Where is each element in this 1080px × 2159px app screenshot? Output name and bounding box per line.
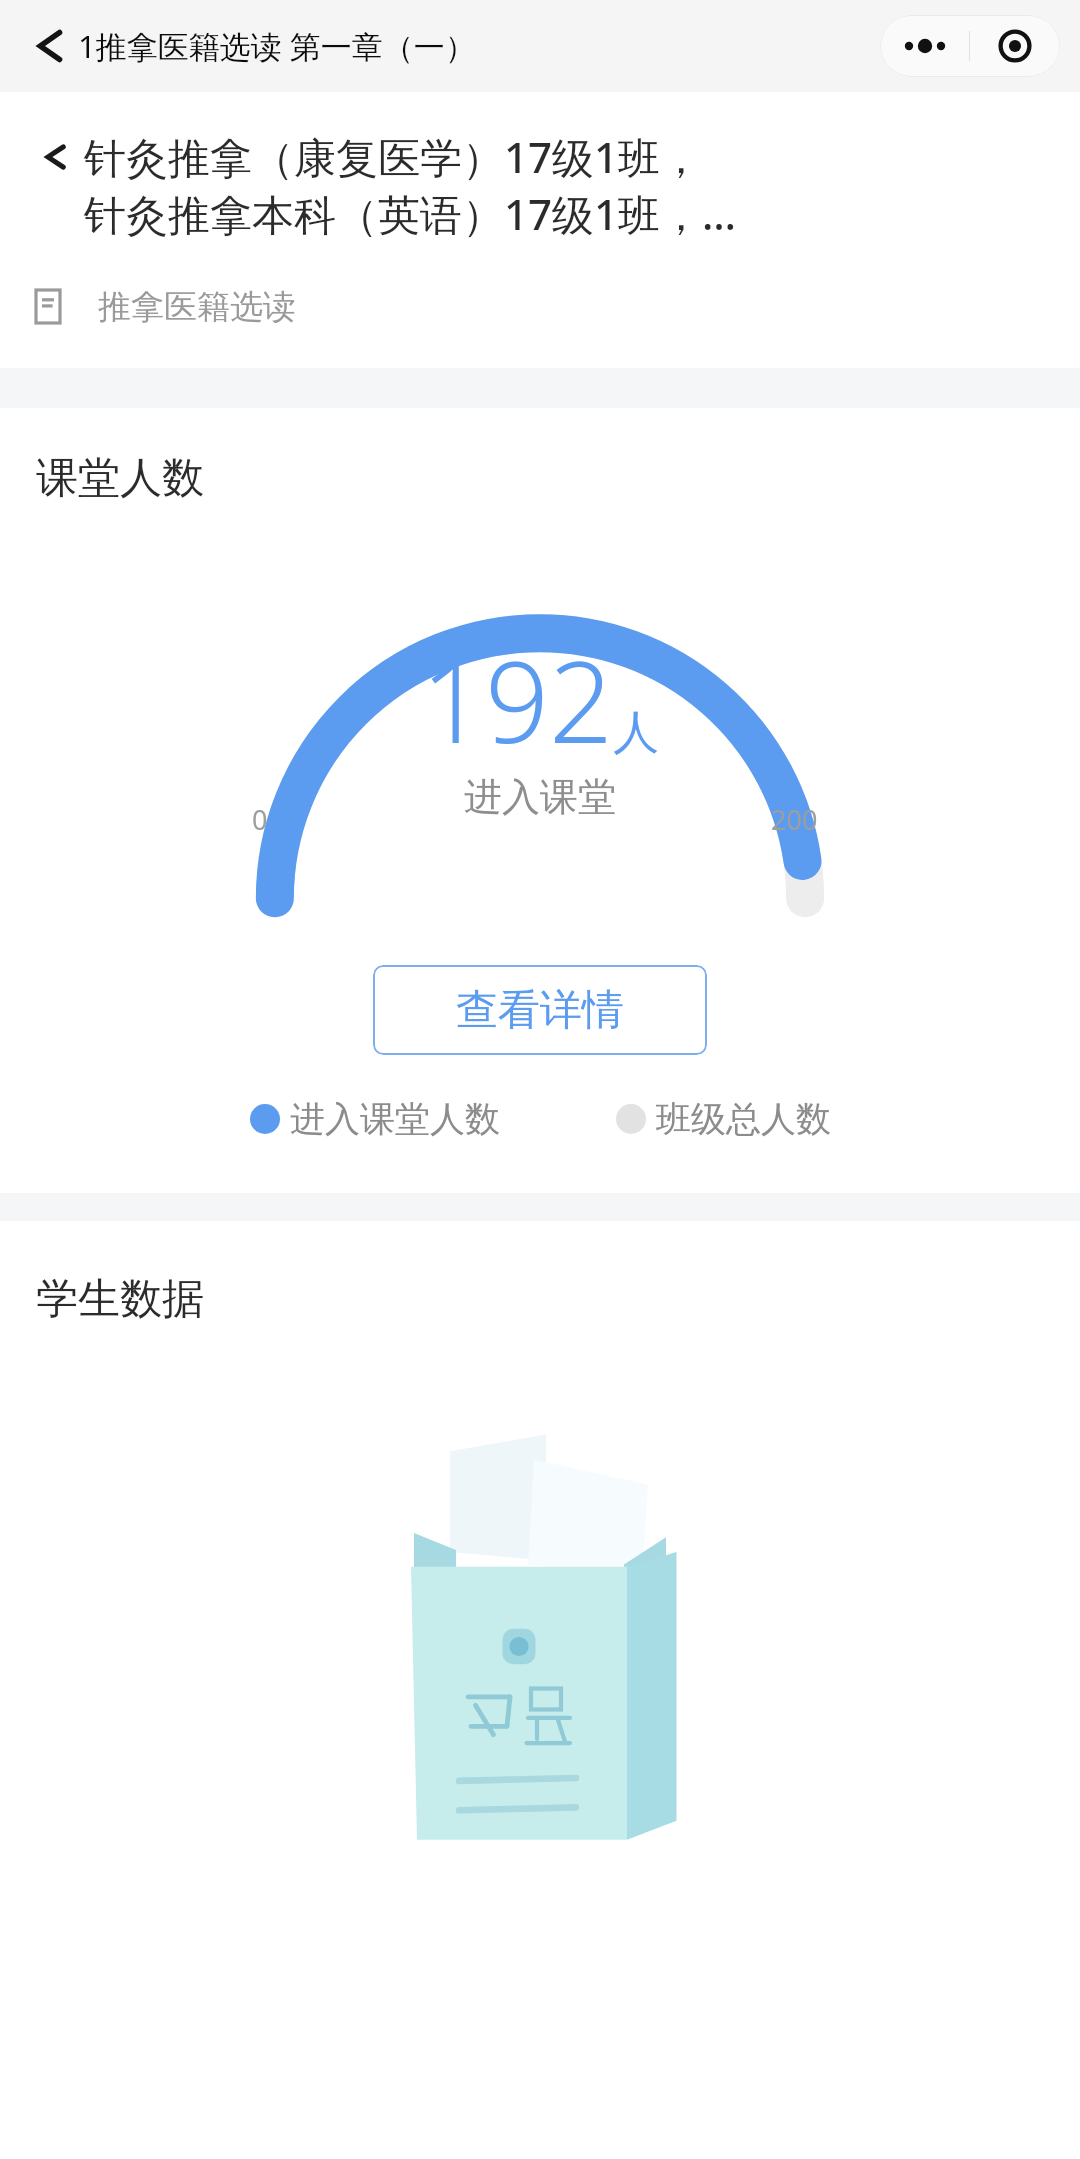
button[interactable]: 班级总人数 (616, 1097, 831, 1141)
staticText: 进入课堂 (464, 773, 616, 821)
other: Back (32, 140, 66, 174)
button[interactable]: 进入课堂人数 (250, 1097, 500, 1141)
staticText: 查看详情 (456, 984, 624, 1037)
staticText: 人 (613, 704, 659, 762)
staticText: 192 (421, 623, 613, 776)
staticText: 推拿医籍选读 (98, 286, 296, 328)
staticText: 针灸推拿（康复医学）17级1班， (84, 128, 703, 185)
staticText: 课堂人数 (36, 452, 204, 505)
button[interactable]: 查看详情 (373, 965, 707, 1055)
staticText: 进入课堂人数 (290, 1097, 500, 1141)
button[interactable]: Close (970, 15, 1060, 77)
staticText: 针灸推拿本科（英语）17级1班，… (84, 185, 737, 242)
staticText: 1推拿医籍选读 第一章（一） (78, 25, 476, 67)
staticText: 200 (771, 801, 818, 838)
button[interactable]: 推拿医籍选读 (34, 286, 1080, 328)
staticText: 0 (252, 801, 268, 838)
staticText: 学生数据 (36, 1273, 204, 1326)
button[interactable]: More (880, 15, 969, 77)
button[interactable]: Back (18, 20, 70, 72)
button[interactable]: Back (32, 128, 1056, 242)
staticText: 班级总人数 (656, 1097, 831, 1141)
